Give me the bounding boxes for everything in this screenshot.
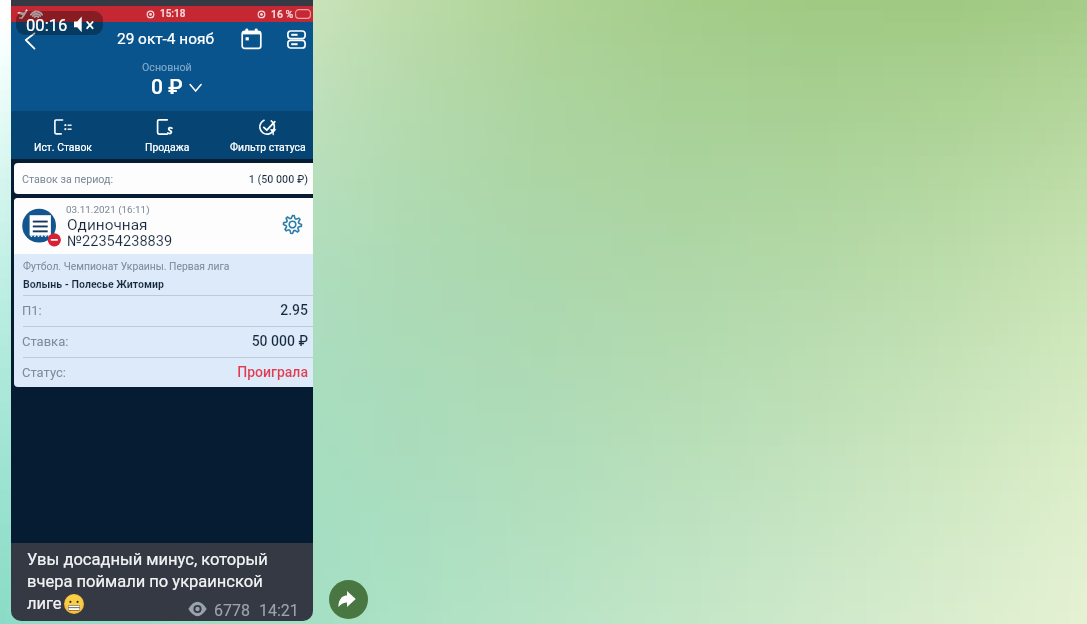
staticText: 00:16 — [26, 16, 68, 35]
staticText: Футбол. Чемпионат Украины. Первая лига — [23, 260, 230, 272]
staticText: Волынь - Полесье Житомир — [23, 278, 164, 290]
staticText: 15:18 — [160, 8, 186, 20]
button[interactable]: Волынь - Полесье Житомир — [14, 254, 313, 295]
staticText: Проиграла — [11, 364, 308, 380]
staticText: 6778 — [214, 601, 250, 620]
button[interactable]: Bet settings — [282, 214, 303, 235]
staticText: 50 000 ₽ — [11, 333, 308, 349]
button[interactable]: Ист. Ставок — [11, 111, 114, 159]
staticText: П1: — [22, 303, 42, 318]
button[interactable]: Change view — [287, 28, 307, 48]
staticText: Одиночная — [67, 216, 148, 234]
staticText: 2.95 — [11, 302, 308, 318]
staticText: Статус: — [22, 365, 66, 380]
button[interactable]: Ставок за период: 1 (50 000 ₽) — [14, 163, 313, 194]
staticText: 1 (50 000 ₽) — [11, 173, 308, 186]
staticText: №22354238839 — [67, 232, 173, 249]
button[interactable]: Одиночная №22354238839, 03.11.2021 — [14, 198, 313, 254]
staticText: Увы досадный минус, который вчера поймал… — [27, 550, 299, 613]
staticText: 29 окт-4 нояб — [117, 30, 214, 48]
staticText: Основной — [142, 61, 192, 74]
button[interactable]: Back — [18, 27, 44, 53]
button[interactable]: Статус: Проиграла — [14, 357, 313, 387]
button[interactable]: Switch account: Основной, 0 ₽ — [130, 58, 210, 103]
staticText: Ставка: — [22, 334, 69, 349]
button[interactable]: Select dates — [241, 28, 262, 49]
staticText: Ист. Ставок — [34, 141, 92, 153]
staticText: Продажа — [145, 141, 190, 153]
button[interactable]: Фильтр статуса — [217, 111, 313, 159]
staticText: 14:21 — [259, 601, 299, 620]
staticText: Фильтр статуса — [230, 141, 306, 153]
staticText: 03.11.2021 (16:11) — [66, 204, 150, 216]
button[interactable]: Forward message — [329, 580, 368, 619]
staticText: 0 ₽ — [151, 75, 183, 100]
button[interactable]: Ставка: 50 000 ₽ — [14, 326, 313, 357]
staticText: Ставок за период: — [22, 173, 114, 186]
button[interactable]: Продажа — [114, 111, 217, 159]
button[interactable]: Play video, 00:16 — [11, 0, 313, 543]
button[interactable]: П1: 2.95 — [14, 295, 313, 326]
staticText: 16 % — [271, 8, 294, 20]
